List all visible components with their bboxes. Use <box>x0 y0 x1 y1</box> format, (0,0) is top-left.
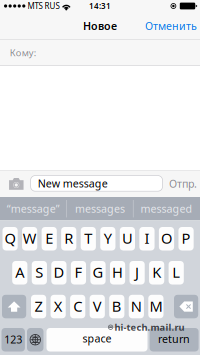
button[interactable]: “message” <box>0 197 67 220</box>
staticText: A <box>15 262 24 282</box>
button[interactable]: U <box>120 227 135 250</box>
staticText: D <box>53 262 64 282</box>
staticText: C <box>73 296 82 316</box>
staticText: E <box>45 228 53 248</box>
button[interactable]: M <box>148 295 163 318</box>
button[interactable]: T <box>81 227 96 250</box>
button[interactable]: J <box>129 261 145 284</box>
staticText: Отменить <box>145 19 197 33</box>
staticText: F <box>74 262 82 282</box>
button[interactable]: N <box>129 295 144 318</box>
button[interactable]: Attach photo <box>4 170 28 197</box>
staticText: Q <box>5 228 16 248</box>
staticText: H <box>112 262 123 282</box>
button[interactable]: Q <box>2 227 18 250</box>
button[interactable]: D <box>51 261 66 284</box>
button[interactable]: 123 <box>1 328 25 351</box>
staticText: V <box>93 296 102 316</box>
staticText: hi-tech.mail.ru <box>114 321 184 333</box>
button[interactable]: messaged <box>133 197 200 220</box>
staticText: Кому: <box>10 47 37 59</box>
button[interactable]: Next keyboard <box>27 328 43 351</box>
staticText: M <box>149 296 162 316</box>
staticText: return <box>158 332 190 346</box>
button[interactable]: V <box>90 295 105 318</box>
staticText: “message” <box>7 202 60 216</box>
button[interactable]: return <box>150 328 199 351</box>
staticText: L <box>172 262 180 282</box>
button[interactable]: L <box>169 261 184 284</box>
staticText: B <box>112 296 122 316</box>
staticText: N <box>131 296 142 316</box>
staticText: space <box>82 331 111 345</box>
staticText: R <box>64 228 73 248</box>
staticText: messaged <box>141 202 193 216</box>
staticText: T <box>84 228 92 248</box>
button[interactable]: I <box>139 227 154 250</box>
button[interactable]: Z <box>31 295 46 318</box>
button[interactable]: F <box>71 261 86 284</box>
button[interactable]: P <box>178 227 194 250</box>
staticText: MTS RUS <box>27 1 59 11</box>
button[interactable]: Shift <box>2 295 26 318</box>
staticText: Отпр. <box>169 176 197 191</box>
button[interactable]: A <box>12 261 27 284</box>
button[interactable]: W <box>22 227 37 250</box>
button[interactable]: Отпр. <box>167 170 199 197</box>
button[interactable]: E <box>42 227 57 250</box>
button[interactable]: H <box>110 261 125 284</box>
staticText: P <box>182 228 191 248</box>
staticText: Новое <box>83 19 117 33</box>
button[interactable]: R <box>61 227 76 250</box>
button[interactable]: Отменить <box>142 12 200 39</box>
button[interactable]: O <box>159 227 174 250</box>
button[interactable]: C <box>70 295 85 318</box>
staticText: J <box>135 262 139 282</box>
button[interactable]: G <box>90 261 106 284</box>
button[interactable]: space <box>46 328 147 351</box>
staticText: G <box>92 262 103 282</box>
staticText: I <box>144 228 149 248</box>
staticText: New message <box>38 176 108 190</box>
staticText: O <box>161 228 172 248</box>
staticText: X <box>54 296 63 316</box>
staticText: S <box>35 262 43 282</box>
staticText: K <box>152 262 161 282</box>
staticText: 14:31 <box>89 1 111 11</box>
staticText: Z <box>35 296 43 316</box>
staticText: U <box>122 228 133 248</box>
button[interactable]: messages <box>67 197 133 220</box>
button[interactable]: X <box>50 295 66 318</box>
staticText: messages <box>75 202 125 216</box>
button[interactable]: B <box>109 295 124 318</box>
staticText: 123 <box>4 332 22 346</box>
button[interactable]: Delete <box>174 295 198 318</box>
button[interactable]: K <box>149 261 164 284</box>
button[interactable]: S <box>32 261 47 284</box>
staticText: W <box>23 228 37 248</box>
staticText: Y <box>104 228 112 248</box>
button[interactable]: Y <box>100 227 115 250</box>
